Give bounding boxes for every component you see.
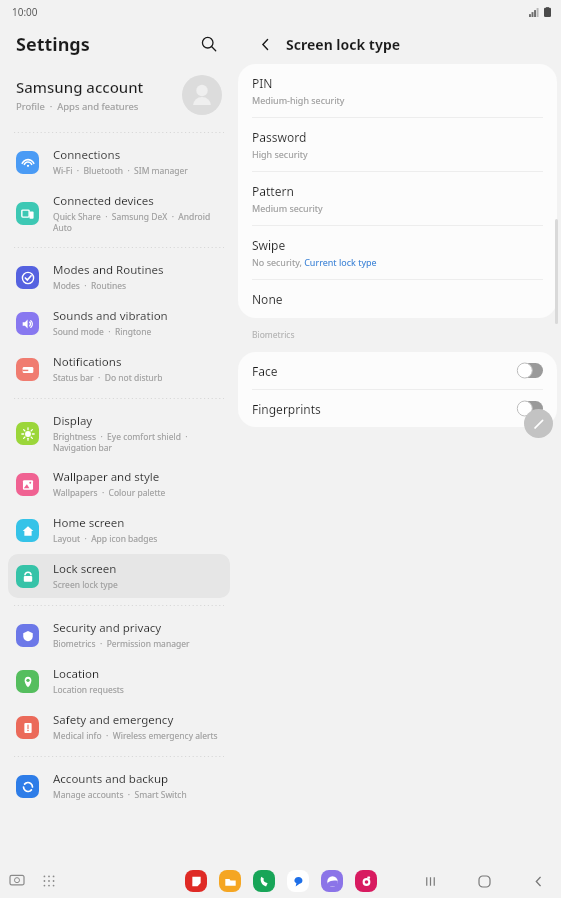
- button[interactable]: messages: [287, 870, 309, 892]
- button[interactable]: Recents: [417, 868, 443, 894]
- staticText: Connections: [53, 147, 121, 163]
- button[interactable]: Face: [238, 352, 557, 389]
- staticText: Profile · Apps and features: [16, 100, 139, 113]
- button[interactable]: Safety and emergency: [8, 705, 230, 749]
- staticText: Screen lock type: [53, 579, 118, 591]
- staticText: PIN: [252, 75, 273, 91]
- staticText: Security and privacy: [53, 620, 162, 636]
- staticText: Pattern: [252, 183, 294, 199]
- button[interactable]: Display: [8, 406, 230, 460]
- button[interactable]: Connected devices: [8, 186, 230, 240]
- button[interactable]: All apps: [38, 870, 60, 892]
- staticText: Screen lock type: [286, 35, 401, 54]
- staticText: Biometrics: [252, 329, 295, 341]
- button[interactable]: Swipe: [238, 226, 557, 279]
- staticText: Accounts and backup: [53, 771, 169, 787]
- staticText: Brightness · Eye comfort shield · Naviga…: [53, 431, 188, 453]
- staticText: Medium-high security: [252, 94, 345, 106]
- staticText: Sound mode · Ringtone: [53, 326, 152, 338]
- staticText: Home screen: [53, 515, 125, 531]
- button[interactable]: Password: [238, 118, 557, 171]
- button[interactable]: Back: [525, 868, 551, 894]
- staticText: No security, Current lock type: [252, 256, 377, 268]
- button[interactable]: camera: [355, 870, 377, 892]
- staticText: Settings: [16, 32, 90, 57]
- button[interactable]: Recent apps: [6, 870, 28, 892]
- staticText: Display: [53, 413, 93, 429]
- button[interactable]: Home screen: [8, 508, 230, 552]
- button[interactable]: Security and privacy: [8, 613, 230, 657]
- staticText: None: [252, 291, 283, 307]
- button[interactable]: Notifications: [8, 347, 230, 391]
- staticText: Quick Share · Samsung DeX · Android Auto: [53, 211, 211, 233]
- staticText: Location: [53, 666, 100, 682]
- button[interactable]: Back: [252, 31, 278, 57]
- button[interactable]: Accounts and backup: [8, 764, 230, 808]
- staticText: Face: [252, 363, 517, 379]
- button[interactable]: Fingerprints: [238, 390, 557, 427]
- button[interactable]: internet: [321, 870, 343, 892]
- button[interactable]: notes: [185, 870, 207, 892]
- button[interactable]: Home: [471, 868, 497, 894]
- button[interactable]: Samsung account: [0, 64, 238, 126]
- button[interactable]: Lock screen: [8, 554, 230, 598]
- staticText: Connected devices: [53, 193, 154, 209]
- staticText: Notifications: [53, 354, 122, 370]
- staticText: Modes · Routines: [53, 280, 127, 292]
- button[interactable]: Modes and Routines: [8, 255, 230, 299]
- staticText: Swipe: [252, 237, 286, 253]
- staticText: Manage accounts · Smart Switch: [53, 789, 187, 801]
- staticText: Layout · App icon badges: [53, 533, 158, 545]
- staticText: Samsung account: [16, 77, 144, 97]
- staticText: Medium security: [252, 202, 323, 214]
- staticText: Sounds and vibration: [53, 308, 168, 324]
- button[interactable]: files: [219, 870, 241, 892]
- staticText: Modes and Routines: [53, 262, 164, 278]
- button[interactable]: None: [238, 280, 557, 318]
- button[interactable]: Pattern: [238, 172, 557, 225]
- button[interactable]: PIN: [238, 64, 557, 117]
- button[interactable]: Location: [8, 659, 230, 703]
- staticText: Biometrics · Permission manager: [53, 638, 190, 650]
- button[interactable]: phone: [253, 870, 275, 892]
- staticText: Wallpaper and style: [53, 469, 160, 485]
- staticText: Medical info · Wireless emergency alerts: [53, 730, 218, 742]
- button[interactable]: Search: [192, 27, 226, 61]
- staticText: Wi-Fi · Bluetooth · SIM manager: [53, 165, 188, 177]
- staticText: Safety and emergency: [53, 712, 174, 728]
- staticText: Wallpapers · Colour palette: [53, 487, 166, 499]
- button[interactable]: Edit: [524, 409, 553, 438]
- staticText: 10:00: [12, 5, 38, 19]
- button[interactable]: Wallpaper and style: [8, 462, 230, 506]
- button[interactable]: Connections: [8, 140, 230, 184]
- staticText: Status bar · Do not disturb: [53, 372, 163, 384]
- staticText: Lock screen: [53, 561, 117, 577]
- button[interactable]: Sounds and vibration: [8, 301, 230, 345]
- staticText: Location requests: [53, 684, 124, 696]
- staticText: Fingerprints: [252, 401, 517, 417]
- staticText: High security: [252, 148, 308, 160]
- staticText: Password: [252, 129, 307, 145]
